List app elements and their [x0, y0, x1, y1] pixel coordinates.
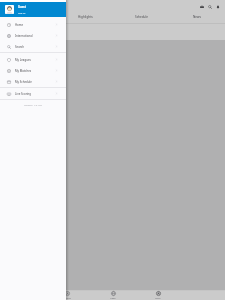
- button[interactable]: News: [169, 12, 225, 24]
- staticText: Log in: [18, 11, 26, 14]
- staticText: News: [193, 15, 201, 19]
- staticText: Football: [23, 15, 35, 19]
- button[interactable]: Live TV: [198, 3, 206, 11]
- button[interactable]: My Leagues: [0, 54, 66, 65]
- button[interactable]: Search: [206, 3, 214, 11]
- button[interactable]: Schedule: [113, 12, 169, 24]
- staticText: Schedule: [135, 15, 148, 19]
- button[interactable]: Scores: [45, 290, 90, 300]
- button[interactable]: News: [90, 290, 135, 300]
- button[interactable]: My Matches: [0, 65, 66, 76]
- button[interactable]: My Schedule: [0, 76, 66, 87]
- staticText: Search: [15, 45, 24, 49]
- staticText: International: [15, 34, 33, 38]
- staticText: Version 1.0.146: [24, 103, 42, 106]
- button[interactable]: Search: [0, 41, 66, 52]
- staticText: More: [155, 297, 161, 300]
- staticText: My Matches: [15, 69, 32, 73]
- staticText: Highlights: [78, 15, 93, 19]
- staticText: Guest: [18, 5, 26, 9]
- button[interactable]: International: [0, 30, 66, 41]
- button[interactable]: More: [135, 290, 180, 300]
- button[interactable]: Home: [0, 19, 66, 30]
- staticText: News: [110, 297, 116, 300]
- button[interactable]: Live Scoring: [0, 88, 66, 99]
- button[interactable]: Football: [0, 12, 57, 24]
- button[interactable]: Notifications: [214, 3, 222, 11]
- staticText: My Leagues: [15, 58, 31, 62]
- button[interactable]: Highlights: [57, 12, 113, 24]
- staticText: Home: [15, 23, 24, 27]
- staticText: My Schedule: [15, 80, 32, 84]
- staticText: Scores: [64, 297, 71, 300]
- staticText: Live Scoring: [15, 92, 32, 96]
